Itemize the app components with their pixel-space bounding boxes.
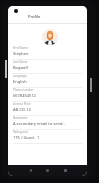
button[interactable]: Language <box>8 74 87 88</box>
staticText: Newsletter <box>13 116 28 120</box>
staticText: License Plate <box>13 102 31 106</box>
button[interactable]: Home <box>42 165 53 176</box>
staticText: AB-CD-12 <box>13 107 31 112</box>
staticText: Bogwell <box>13 65 28 70</box>
staticText: Phone number <box>13 88 34 92</box>
button[interactable]: Last Name <box>8 60 87 74</box>
staticText: Profile <box>28 14 41 19</box>
staticText: Rating and <box>13 130 28 134</box>
button[interactable]: Phone number <box>8 88 87 102</box>
staticText: First Name <box>13 46 28 50</box>
button[interactable]: Newsletter <box>8 116 87 130</box>
staticText: 175 / Good - 1 <box>13 135 40 140</box>
button[interactable]: Rating and <box>8 130 87 144</box>
button[interactable]: Change photo <box>53 39 57 43</box>
staticText: Stephen <box>13 51 29 56</box>
button[interactable]: Recent apps <box>60 165 71 176</box>
staticText: 0678454512 <box>13 93 36 98</box>
button[interactable]: Back <box>25 165 36 176</box>
button[interactable]: License Plate <box>8 102 87 116</box>
staticText: Last Name <box>13 60 28 64</box>
staticText: English <box>13 79 27 84</box>
staticText: Language <box>13 74 27 78</box>
button[interactable]: First Name <box>8 46 87 60</box>
staticText: A secondary email to send... <box>13 121 66 126</box>
